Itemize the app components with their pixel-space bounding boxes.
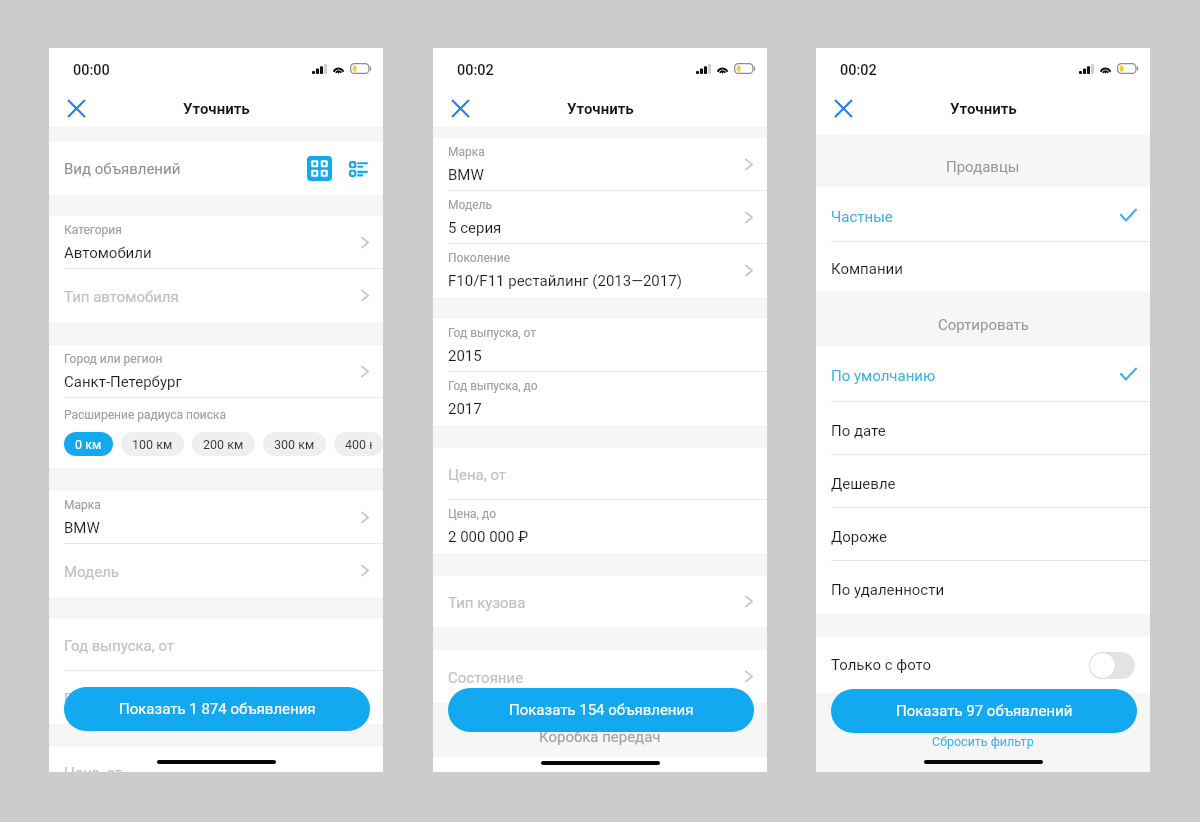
staticText: 00:02 (840, 62, 877, 79)
button[interactable]: Цена, от (433, 448, 767, 500)
button[interactable]: Частные (816, 187, 1150, 242)
button[interactable]: Цена, до (433, 500, 767, 553)
button[interactable]: Марка (433, 138, 767, 191)
button[interactable]: Год выпуска, от (49, 619, 383, 671)
button[interactable]: Поколение (433, 244, 767, 297)
staticText: Расширение радиуса поиска (64, 408, 227, 422)
staticText: Цена, от (64, 764, 123, 772)
staticText: 00:00 (73, 62, 110, 79)
staticText: Год выпуска, от (448, 326, 537, 340)
staticText: Коробка передач (539, 728, 661, 746)
staticText: 100 км (132, 437, 173, 452)
staticText: BMW (64, 519, 100, 537)
button[interactable]: Состояние (433, 650, 767, 703)
button[interactable]: Close (445, 93, 475, 123)
button[interactable]: Модель (433, 191, 767, 244)
button[interactable]: Тип автомобиля (49, 269, 383, 322)
button[interactable]: Год выпуска, от (433, 319, 767, 372)
staticText: Тип кузова (448, 594, 526, 612)
staticText: Показать 1 874 объявления (119, 700, 316, 718)
staticText: Модель (448, 198, 492, 212)
staticText: Дороже (831, 528, 887, 546)
staticText: Марка (448, 145, 485, 159)
button[interactable]: Показать 1 874 объявления (64, 687, 370, 731)
button[interactable]: Компании (816, 242, 1150, 291)
staticText: F10/F11 рестайлинг (2013—2017) (448, 272, 682, 290)
staticText: 300 км (274, 437, 315, 452)
button[interactable]: Дешевле (816, 455, 1150, 508)
staticText: Только с фото (831, 656, 932, 674)
button[interactable]: По удаленности (816, 561, 1150, 614)
button[interactable]: 0 км (64, 432, 113, 456)
staticText: Автомобили (64, 244, 152, 262)
staticText: Сортировать (938, 316, 1029, 334)
staticText: Показать 154 объявления (509, 701, 694, 719)
button[interactable]: Категория (49, 216, 383, 269)
staticText: Год выпуска, до (64, 690, 177, 708)
staticText: По удаленности (831, 581, 945, 599)
staticText: Уточнить (950, 100, 1017, 118)
button[interactable]: Год выпуска, до (49, 671, 383, 724)
staticText: Цена, до (448, 507, 497, 521)
staticText: Уточнить (567, 100, 634, 118)
button[interactable]: Close (61, 93, 91, 123)
button[interactable]: 200 км (192, 432, 255, 456)
staticText: Дешевле (831, 475, 896, 493)
button[interactable]: Цена, от (49, 747, 383, 772)
staticText: По дате (831, 422, 886, 440)
staticText: Модель (64, 563, 119, 581)
staticText: Марка (64, 498, 101, 512)
button[interactable]: Grid view (307, 156, 332, 181)
button[interactable]: Модель (49, 544, 383, 597)
staticText: Год выпуска, от (64, 637, 175, 655)
staticText: Уточнить (183, 100, 250, 118)
staticText: Поколение (448, 251, 511, 265)
staticText: 0 км (75, 437, 102, 452)
staticText: Санкт-Петербург (64, 373, 182, 391)
button[interactable]: Close (828, 93, 858, 123)
staticText: BMW (448, 166, 484, 184)
staticText: 2015 (448, 347, 482, 365)
button[interactable]: 300 км (263, 432, 326, 456)
button[interactable]: Тип кузова (433, 576, 767, 627)
staticText: Сбросить фильтр (932, 734, 1034, 749)
staticText: Цена, от (448, 466, 507, 484)
staticText: Категория (64, 223, 122, 237)
button[interactable]: List view (349, 161, 367, 177)
button[interactable]: Город или регион (49, 345, 383, 398)
staticText: Частные (831, 208, 893, 226)
staticText: Год выпуска, до (448, 379, 538, 393)
staticText: 400 км (345, 437, 372, 452)
button[interactable]: Только с фото (816, 637, 1150, 693)
button[interactable]: Дороже (816, 508, 1150, 561)
staticText: Состояние (448, 669, 524, 687)
staticText: 00:02 (457, 62, 494, 79)
button[interactable]: Сбросить фильтр (932, 734, 1034, 749)
button[interactable]: Only with photo (1089, 652, 1135, 679)
button[interactable]: Марка (49, 491, 383, 544)
staticText: 2017 (448, 400, 482, 418)
button[interactable]: Год выпуска, до (433, 372, 767, 425)
button[interactable]: По дате (816, 402, 1150, 455)
staticText: 2 000 000 ₽ (448, 528, 529, 546)
button[interactable]: 100 км (121, 432, 184, 456)
staticText: Город или регион (64, 352, 163, 366)
button[interactable]: По умолчанию (816, 346, 1150, 402)
staticText: По умолчанию (831, 367, 936, 385)
button[interactable]: Показать 154 объявления (448, 688, 754, 732)
staticText: 5 серия (448, 219, 502, 237)
staticText: Тип автомобиля (64, 288, 179, 306)
staticText: Продавцы (946, 158, 1020, 176)
staticText: Вид объявлений (64, 160, 181, 178)
staticText: Компании (831, 260, 903, 278)
button[interactable]: 400 км (334, 432, 383, 456)
button[interactable]: Показать 97 объявлений (831, 689, 1137, 733)
staticText: 200 км (203, 437, 244, 452)
staticText: Показать 97 объявлений (896, 702, 1073, 720)
